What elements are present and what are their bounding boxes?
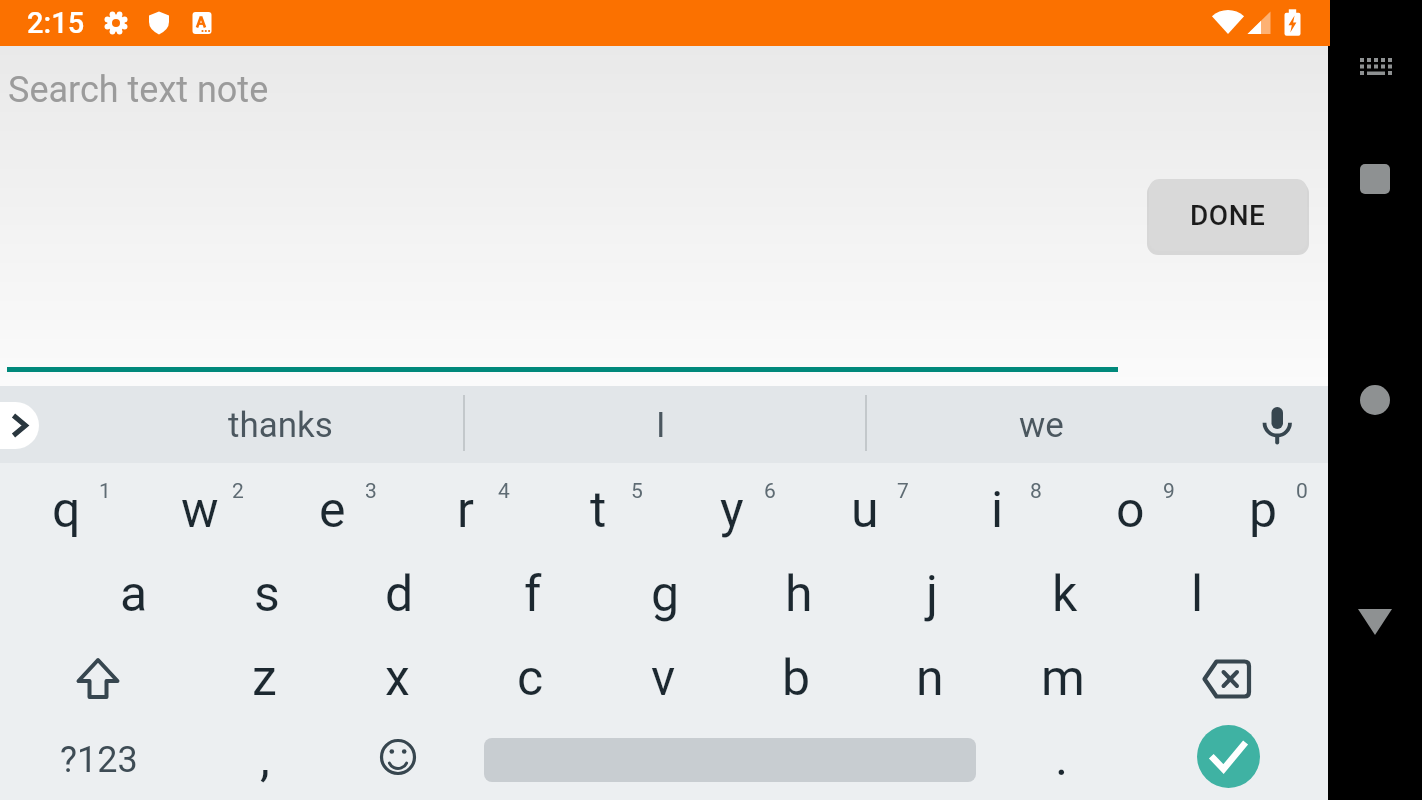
staticText: y bbox=[720, 481, 744, 540]
staticText: thanks bbox=[228, 405, 333, 446]
staticText: l bbox=[1191, 565, 1204, 624]
button[interactable]: i bbox=[931, 468, 1064, 552]
button[interactable] bbox=[0, 402, 39, 449]
button[interactable]: a bbox=[67, 552, 200, 636]
staticText: h bbox=[785, 565, 813, 624]
staticText: e bbox=[319, 481, 346, 540]
staticText: Search text note bbox=[8, 69, 269, 111]
staticText: v bbox=[651, 649, 676, 708]
button[interactable] bbox=[338, 718, 458, 798]
staticText: ?123 bbox=[60, 739, 138, 781]
button[interactable] bbox=[1253, 399, 1303, 451]
button[interactable]: z bbox=[198, 636, 331, 720]
staticText: x bbox=[385, 649, 410, 708]
button[interactable]: c bbox=[464, 636, 597, 720]
button[interactable] bbox=[1330, 22, 1422, 114]
button[interactable]: f bbox=[466, 552, 599, 636]
button[interactable]: m bbox=[996, 636, 1129, 720]
staticText: k bbox=[1052, 565, 1078, 624]
button[interactable]: b bbox=[730, 636, 863, 720]
staticText: 3 bbox=[365, 479, 377, 504]
staticText: 5 bbox=[631, 479, 643, 504]
staticText: s bbox=[254, 565, 280, 624]
staticText: , bbox=[260, 729, 270, 788]
staticText: m bbox=[1041, 649, 1085, 708]
button[interactable] bbox=[31, 637, 165, 721]
staticText: 4 bbox=[498, 479, 510, 504]
button[interactable]: h bbox=[732, 552, 865, 636]
button[interactable]: d bbox=[333, 552, 466, 636]
button[interactable]: j bbox=[865, 552, 998, 636]
staticText: 9 bbox=[1163, 479, 1175, 504]
button[interactable]: o bbox=[1064, 468, 1197, 552]
staticText: z bbox=[252, 649, 277, 708]
staticText: 1 bbox=[99, 479, 111, 504]
staticText: d bbox=[385, 565, 414, 624]
staticText: j bbox=[926, 565, 938, 624]
staticText: t bbox=[590, 481, 607, 540]
button[interactable]: k bbox=[998, 552, 1131, 636]
button[interactable]: s bbox=[200, 552, 333, 636]
staticText: c bbox=[517, 649, 544, 708]
button[interactable]: y bbox=[665, 468, 798, 552]
button[interactable]: l bbox=[1131, 552, 1264, 636]
button[interactable]: DONE bbox=[1149, 179, 1307, 251]
staticText: a bbox=[120, 565, 148, 624]
staticText: o bbox=[1116, 481, 1145, 540]
staticText: i bbox=[991, 481, 1004, 540]
staticText: . bbox=[1055, 729, 1069, 788]
staticText: DONE bbox=[1190, 199, 1266, 232]
button[interactable] bbox=[1330, 354, 1422, 446]
button[interactable]: , bbox=[205, 718, 325, 798]
button[interactable]: x bbox=[331, 636, 464, 720]
staticText: f bbox=[524, 565, 542, 624]
staticText: r bbox=[457, 481, 474, 540]
staticText: 8 bbox=[1030, 479, 1042, 504]
staticText: 0 bbox=[1296, 479, 1308, 504]
button[interactable]: p bbox=[1197, 468, 1330, 552]
button[interactable]: u bbox=[798, 468, 931, 552]
button[interactable]: q bbox=[0, 468, 133, 552]
button[interactable]: n bbox=[863, 636, 996, 720]
button[interactable]: I bbox=[481, 387, 841, 464]
staticText: u bbox=[851, 481, 879, 540]
staticText: 2 bbox=[232, 479, 244, 504]
button[interactable]: r bbox=[399, 468, 532, 552]
button[interactable]: g bbox=[599, 552, 732, 636]
staticText: p bbox=[1249, 481, 1278, 540]
button[interactable]: w bbox=[133, 468, 266, 552]
staticText: n bbox=[916, 649, 944, 708]
button[interactable]: ?123 bbox=[19, 720, 179, 800]
button[interactable]: thanks bbox=[100, 387, 460, 464]
button[interactable] bbox=[1197, 725, 1260, 788]
button[interactable] bbox=[1162, 637, 1296, 721]
staticText: we bbox=[1019, 405, 1064, 446]
staticText: g bbox=[651, 565, 680, 624]
button[interactable] bbox=[1330, 576, 1422, 668]
staticText: 7 bbox=[897, 479, 909, 504]
staticText: b bbox=[782, 649, 811, 708]
staticText: I bbox=[656, 405, 666, 446]
staticText: 2:15 bbox=[27, 6, 85, 40]
button[interactable]: e bbox=[266, 468, 399, 552]
staticText: 6 bbox=[764, 479, 776, 504]
button[interactable]: we bbox=[876, 387, 1206, 464]
button[interactable]: t bbox=[532, 468, 665, 552]
staticText: w bbox=[181, 481, 219, 540]
button[interactable]: . bbox=[1002, 718, 1122, 798]
button[interactable]: v bbox=[597, 636, 730, 720]
button[interactable] bbox=[1330, 134, 1422, 226]
staticText: q bbox=[52, 481, 81, 540]
